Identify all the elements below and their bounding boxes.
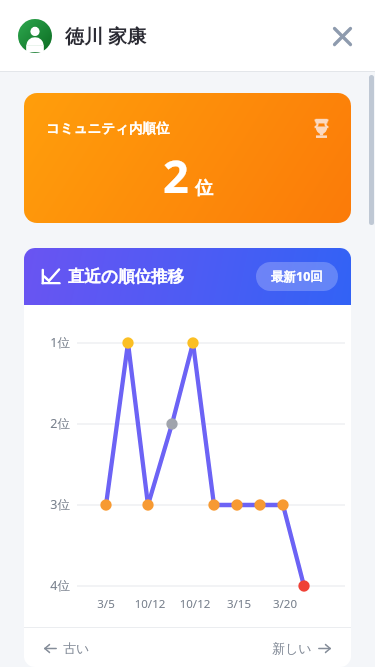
staticText: 直近の順位推移 [68,266,184,287]
staticText: 3/20 [263,596,307,612]
staticText: 4位 [24,577,70,594]
staticText: 1位 [24,334,70,351]
staticText: 10/12 [128,596,172,612]
staticText: 新しい [272,640,312,656]
staticText: 3/15 [217,596,261,612]
staticText: 古い [63,640,90,656]
button[interactable]: 古い [40,636,94,660]
button[interactable]: 最新10回 [256,262,338,291]
button[interactable]: 新しい [268,636,335,660]
staticText: 位 [195,177,213,200]
staticText: 2位 [24,415,70,432]
staticText: 徳川 家康 [65,23,146,49]
button[interactable]: Close [323,17,361,55]
staticText: 3位 [24,496,70,513]
staticText: 3/5 [84,596,128,612]
staticText: 10/12 [173,596,217,612]
button[interactable]: コミュニティ内順位 [24,93,351,223]
staticText: 2 [163,145,189,206]
staticText: コミュニティ内順位 [46,120,170,137]
staticText: 最新10回 [271,268,323,285]
